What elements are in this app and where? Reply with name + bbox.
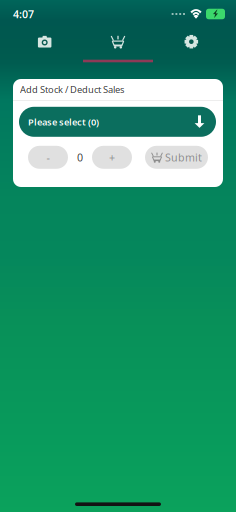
- button[interactable]: -: [28, 146, 68, 169]
- button[interactable]: Settings: [155, 28, 228, 56]
- button[interactable]: Stock: [81, 28, 155, 56]
- staticText: Submit: [165, 150, 202, 164]
- staticText: 4:07: [13, 7, 34, 21]
- staticText: +: [109, 150, 115, 164]
- staticText: 0: [77, 150, 83, 164]
- button[interactable]: Submit: [145, 146, 208, 169]
- button[interactable]: +: [92, 146, 132, 169]
- staticText: Please select (0): [28, 116, 99, 128]
- button[interactable]: Please select (0): [19, 107, 216, 137]
- staticText: Add Stock / Deduct Sales: [20, 83, 124, 96]
- staticText: -: [46, 150, 49, 164]
- button[interactable]: Camera: [8, 28, 81, 56]
